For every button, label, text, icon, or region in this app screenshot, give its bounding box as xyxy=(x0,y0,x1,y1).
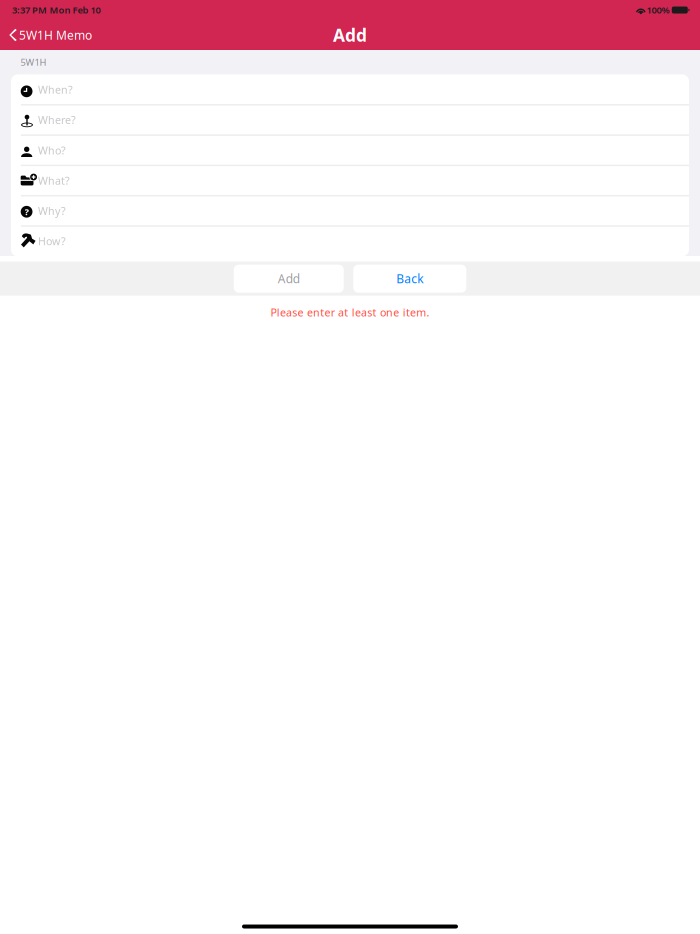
staticText: 5W1H Memo xyxy=(19,27,92,43)
button[interactable]: Who? xyxy=(11,136,689,165)
staticText: Why? xyxy=(38,204,66,218)
button[interactable]: Add xyxy=(234,265,344,293)
staticText: 3:37 PM xyxy=(12,4,47,16)
staticText: ? xyxy=(25,206,29,218)
button[interactable]: 5W1H Memo xyxy=(0,20,102,50)
staticText: Mon Feb 10 xyxy=(49,4,100,16)
staticText: Please enter at least one item. xyxy=(270,305,429,319)
button[interactable]: ? xyxy=(11,196,689,225)
button[interactable]: Where? xyxy=(11,105,689,134)
staticText: When? xyxy=(38,83,73,97)
staticText: How? xyxy=(38,234,66,248)
button[interactable]: When? xyxy=(11,75,689,104)
staticText: Back xyxy=(396,271,423,287)
staticText: Where? xyxy=(38,113,76,127)
staticText: Add xyxy=(333,23,367,46)
staticText: Add xyxy=(278,271,300,287)
staticText: 5W1H xyxy=(20,56,46,68)
staticText: What? xyxy=(38,173,70,188)
staticText: Who? xyxy=(38,143,66,157)
button[interactable]: Back xyxy=(353,265,466,293)
button[interactable]: What? xyxy=(11,166,689,195)
button[interactable]: How? xyxy=(11,227,689,255)
staticText: 100% xyxy=(646,4,669,16)
